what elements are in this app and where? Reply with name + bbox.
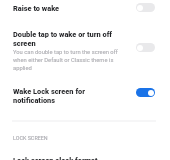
button[interactable]: Raise to wake — [0, 0, 170, 16]
staticText: You can double tap to turn the screen of… — [13, 49, 121, 72]
staticText: Raise to wake — [13, 4, 60, 13]
button[interactable]: Lock screen clock format — [0, 152, 170, 160]
button[interactable]: Double tap to wake or turn off screen — [136, 43, 155, 52]
button[interactable]: Wake Lock screen for notifications — [0, 87, 170, 105]
staticText: Wake Lock screen for notifications — [13, 87, 87, 105]
staticText: Double tap to wake or turn off screen — [13, 30, 121, 48]
staticText: Lock screen clock format — [13, 156, 98, 160]
button[interactable]: Wake Lock screen for notifications — [136, 88, 155, 97]
button[interactable]: Double tap to wake or turn off screen — [0, 30, 170, 71]
staticText: LOCK SCREEN — [13, 135, 48, 141]
button[interactable]: Raise to wake — [136, 3, 155, 12]
